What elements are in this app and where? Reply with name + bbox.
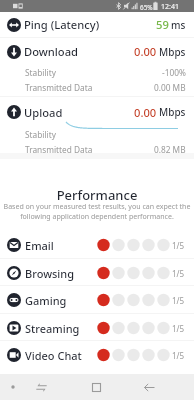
staticText: Performance [0,186,194,204]
staticText: 0.82 MB [154,144,186,155]
button[interactable]: Streaming [0,314,194,342]
staticText: 1/5 [172,268,185,279]
staticText: Stability [25,67,56,78]
staticText: 1/5 [172,240,185,251]
button[interactable]: Back [135,374,163,400]
staticText: -100% [162,67,186,78]
staticText: Ping (Latency) [24,17,100,32]
button[interactable]: Ping (Latency) [0,12,194,37]
staticText: Based on your measured test results, you… [0,201,194,221]
button[interactable]: Download [0,38,194,65]
button[interactable]: Upload [0,97,194,127]
staticText: Email [25,238,54,253]
staticText: Transmitted Data [25,82,93,93]
staticText: 1/5 [172,350,185,361]
staticText: Download [24,44,79,59]
button[interactable]: Video Chat [0,341,194,369]
staticText: ms [171,18,186,32]
staticText: Mbps [159,45,186,59]
staticText: 0.00 MB [154,82,186,93]
staticText: 59 [156,17,169,32]
staticText: 1/5 [172,295,185,306]
button[interactable]: Gaming [0,286,194,314]
staticText: 12:41 [161,2,179,12]
staticText: Browsing [25,266,75,281]
button[interactable]: Browsing [0,259,194,287]
staticText: Upload [24,105,63,120]
staticText: 0.00 [134,105,157,120]
staticText: 0.00 [134,44,157,59]
staticText: Gaming [25,293,67,308]
button[interactable]: Email [0,231,194,259]
button[interactable]: Assistant [0,374,26,400]
staticText: Mbps [159,105,186,119]
staticText: 1/5 [172,323,185,334]
button[interactable]: Home [82,374,110,400]
button[interactable]: Recent apps [27,374,55,400]
staticText: Video Chat [25,348,82,363]
staticText: Stability [25,129,56,140]
staticText: Streaming [25,321,80,336]
staticText: 65% [140,3,153,12]
staticText: Transmitted Data [25,144,93,155]
